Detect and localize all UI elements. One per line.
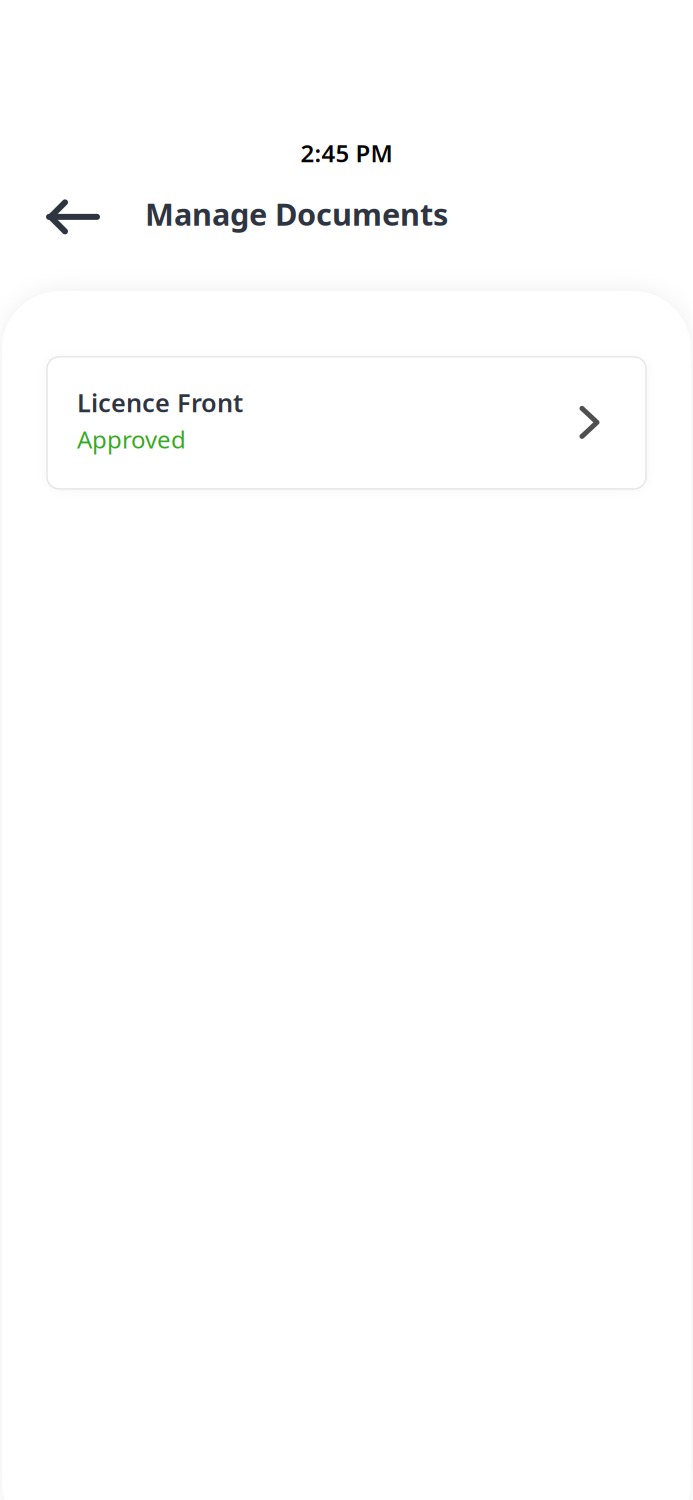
staticText: Licence Front — [77, 386, 243, 419]
button[interactable]: Back — [32, 185, 114, 249]
staticText: 2:45 PM — [300, 137, 392, 169]
staticText: Manage Documents — [145, 193, 448, 234]
staticText: Approved — [77, 423, 186, 455]
button[interactable]: Licence Front — [47, 357, 646, 489]
